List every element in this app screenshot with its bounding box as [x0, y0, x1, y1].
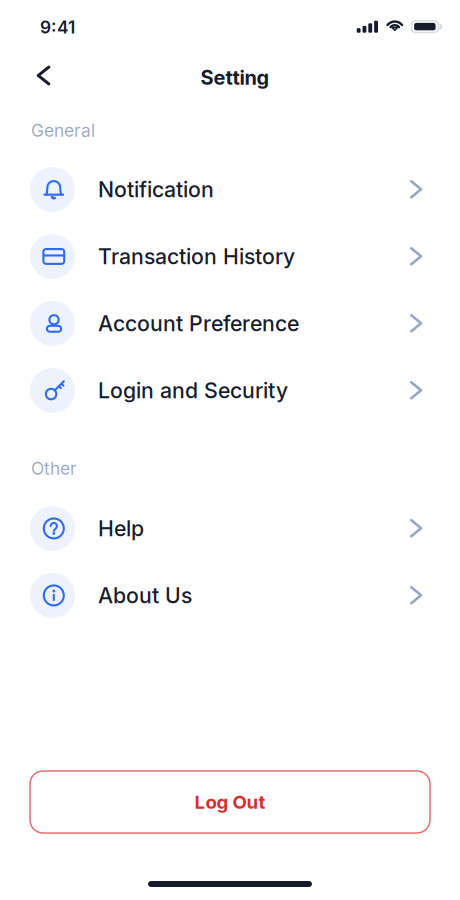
- staticText: Login and Security: [98, 378, 288, 403]
- staticText: About Us: [98, 582, 192, 608]
- staticText: Help: [98, 515, 144, 541]
- button[interactable]: Log Out: [30, 771, 430, 833]
- staticText: Account Preference: [98, 311, 299, 336]
- staticText: Log Out: [194, 791, 265, 813]
- staticText: Transaction History: [98, 244, 295, 269]
- button[interactable]: Account Preference: [0, 290, 460, 357]
- staticText: General: [31, 120, 95, 141]
- button[interactable]: Notification: [0, 156, 460, 223]
- staticText: Notification: [98, 177, 214, 202]
- button[interactable]: About Us: [0, 562, 460, 629]
- staticText: Other: [31, 458, 77, 479]
- staticText: Setting: [200, 65, 269, 90]
- button[interactable]: Back: [21, 53, 65, 97]
- button[interactable]: Transaction History: [0, 223, 460, 290]
- button[interactable]: Login and Security: [0, 357, 460, 424]
- button[interactable]: Help: [0, 495, 460, 562]
- staticText: 9:41: [40, 17, 75, 38]
